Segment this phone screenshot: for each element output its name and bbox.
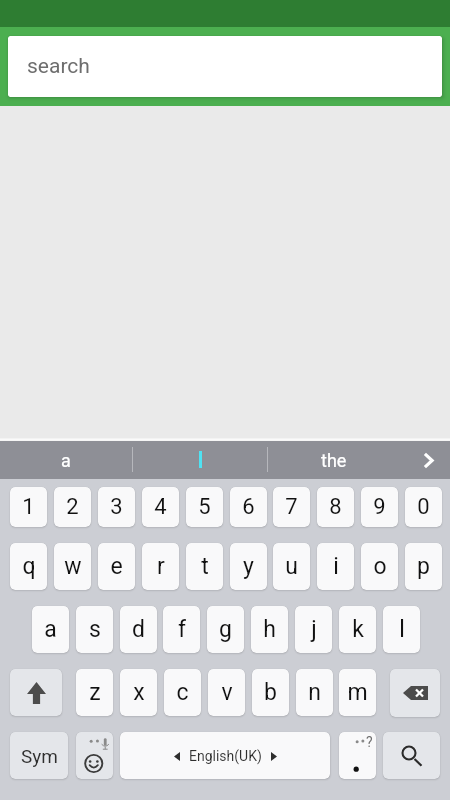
staticText: w <box>64 553 82 580</box>
staticText: j <box>311 616 317 643</box>
staticText: 4 <box>154 494 167 520</box>
button[interactable]: g <box>207 606 244 653</box>
staticText: search <box>27 54 90 79</box>
staticText: q <box>22 553 36 580</box>
button[interactable]: o <box>361 543 398 590</box>
staticText: u <box>285 553 298 580</box>
staticText: 7 <box>285 494 298 520</box>
staticText: 8 <box>329 494 342 520</box>
staticText: p <box>417 553 430 580</box>
staticText: a <box>44 616 57 643</box>
staticText: v <box>221 679 233 706</box>
staticText: l <box>399 616 405 643</box>
staticText: 2 <box>66 494 79 520</box>
button[interactable]: n <box>296 669 333 716</box>
staticText: h <box>263 616 276 643</box>
staticText: the <box>321 450 347 471</box>
button[interactable]: x <box>120 669 157 716</box>
button[interactable]: s <box>76 606 113 653</box>
button[interactable]: Emoji <box>76 732 113 779</box>
button[interactable]: m <box>339 669 376 716</box>
button[interactable]: e <box>98 543 135 590</box>
button[interactable]: Sym <box>10 732 68 779</box>
button[interactable]: the <box>267 441 400 479</box>
button[interactable]: Backspace <box>390 669 440 717</box>
button[interactable]: j <box>295 606 332 653</box>
button[interactable]: t <box>186 543 223 590</box>
staticText: n <box>308 679 321 706</box>
button[interactable]: b <box>252 669 289 716</box>
button[interactable]: r <box>142 543 179 590</box>
button[interactable]: l <box>383 606 420 653</box>
button[interactable]: 1 <box>10 487 47 527</box>
button[interactable]: Shift <box>10 669 62 716</box>
button[interactable]: 0 <box>405 487 442 527</box>
staticText: s <box>89 616 101 643</box>
staticText: r <box>157 553 165 580</box>
staticText: f <box>178 616 186 643</box>
staticText: x <box>133 679 145 706</box>
staticText: ? <box>366 734 373 750</box>
button[interactable]: y <box>230 543 267 590</box>
staticText: c <box>176 679 189 706</box>
staticText: Sym <box>21 745 58 767</box>
staticText: 5 <box>198 494 211 520</box>
button[interactable]: 5 <box>186 487 223 527</box>
button[interactable]: i <box>317 543 354 590</box>
button[interactable]: k <box>339 606 376 653</box>
staticText: z <box>89 679 101 706</box>
button[interactable]: 3 <box>98 487 135 527</box>
button[interactable]: a <box>0 441 132 479</box>
staticText: o <box>373 553 387 580</box>
button[interactable]: d <box>120 606 157 653</box>
button[interactable]: a <box>32 606 69 653</box>
staticText: 1 <box>22 494 35 520</box>
button[interactable]: w <box>54 543 91 590</box>
staticText: English(UK) <box>189 748 262 764</box>
button[interactable]: q <box>10 543 47 590</box>
staticText: g <box>219 616 232 643</box>
button[interactable]: 6 <box>230 487 267 527</box>
staticText: 6 <box>242 494 255 520</box>
staticText: m <box>347 679 368 706</box>
staticText: i <box>333 553 339 580</box>
button[interactable]: 7 <box>273 487 310 527</box>
button[interactable]: v <box>208 669 245 716</box>
button[interactable]: English(UK) <box>120 732 330 779</box>
button[interactable]: More suggestions <box>400 441 450 479</box>
button[interactable]: z <box>76 669 113 716</box>
staticText: t <box>201 553 209 580</box>
button[interactable]: h <box>251 606 288 653</box>
button[interactable]: 9 <box>361 487 398 527</box>
button[interactable]: u <box>273 543 310 590</box>
button[interactable]: 4 <box>142 487 179 527</box>
staticText: d <box>132 616 145 643</box>
button[interactable]: f <box>163 606 200 653</box>
button[interactable] <box>133 441 267 479</box>
staticText: y <box>243 553 254 580</box>
button[interactable]: Period and symbols <box>339 732 376 779</box>
staticText: 0 <box>417 494 430 520</box>
button[interactable]: p <box>405 543 442 590</box>
staticText: b <box>264 679 277 706</box>
staticText: 9 <box>373 494 386 520</box>
button[interactable]: 8 <box>317 487 354 527</box>
button[interactable]: 2 <box>54 487 91 527</box>
staticText: e <box>110 553 123 580</box>
button[interactable]: Search <box>383 732 440 779</box>
staticText: k <box>352 616 364 643</box>
staticText: a <box>61 450 71 471</box>
button[interactable]: search <box>8 36 442 97</box>
staticText: 3 <box>110 494 123 520</box>
button[interactable]: c <box>164 669 201 716</box>
